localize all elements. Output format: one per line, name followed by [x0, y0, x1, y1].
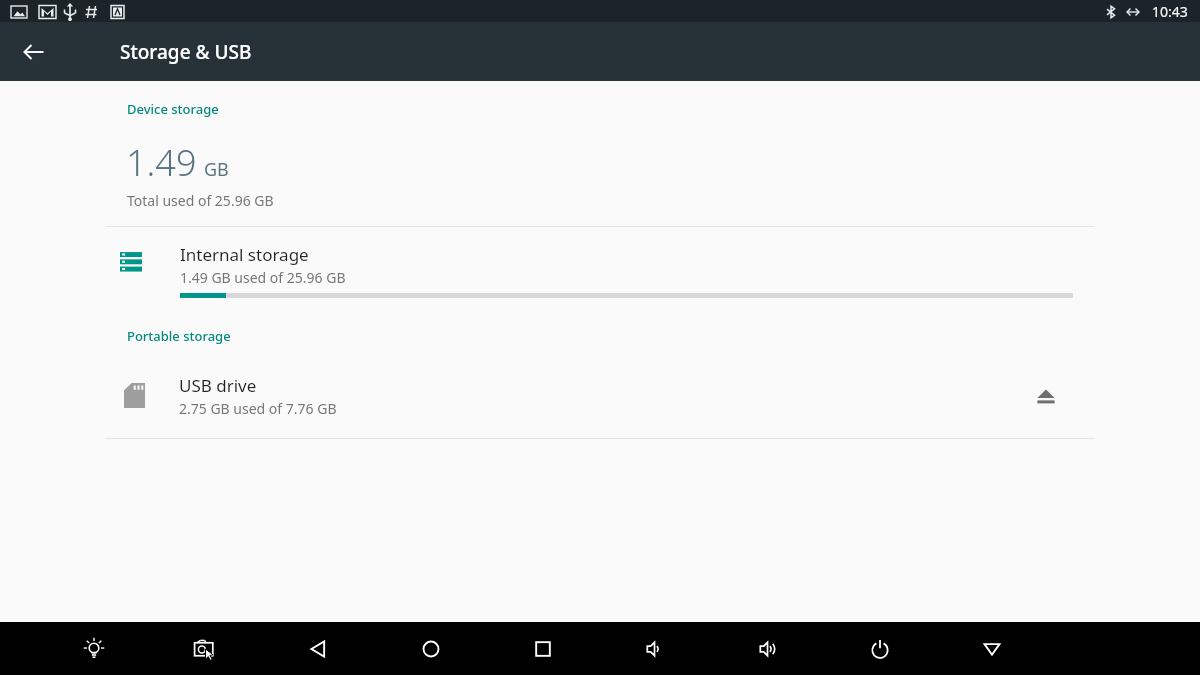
button[interactable]: Screenshot — [179, 623, 231, 675]
staticText: 1.49 GB used of 25.96 GB — [180, 268, 346, 287]
button[interactable]: Internal storage — [0, 227, 1200, 305]
staticText: Device storage — [127, 100, 219, 118]
button[interactable]: Recents — [517, 623, 569, 675]
button[interactable]: Back — [292, 623, 344, 675]
staticText: Total used of 25.96 GB — [127, 191, 274, 210]
staticText: 1.49 — [126, 138, 197, 187]
button[interactable]: Volume down — [629, 623, 681, 675]
staticText: 10:43 — [1152, 2, 1188, 21]
button[interactable]: Hide — [966, 623, 1018, 675]
staticText: Internal storage — [180, 243, 309, 266]
button[interactable]: Back — [10, 28, 58, 76]
button[interactable]: Power — [854, 623, 906, 675]
staticText: 2.75 GB used of 7.76 GB — [179, 399, 337, 418]
staticText: USB drive — [179, 374, 257, 397]
button[interactable]: Brightness — [68, 623, 120, 675]
button[interactable]: Home — [405, 623, 457, 675]
staticText: Storage & USB — [120, 39, 252, 65]
staticText: GB — [204, 157, 229, 182]
button[interactable]: USB drive — [0, 363, 1200, 428]
button[interactable]: Eject USB drive — [1022, 372, 1070, 420]
button[interactable]: Volume up — [742, 623, 794, 675]
staticText: Portable storage — [127, 327, 231, 345]
